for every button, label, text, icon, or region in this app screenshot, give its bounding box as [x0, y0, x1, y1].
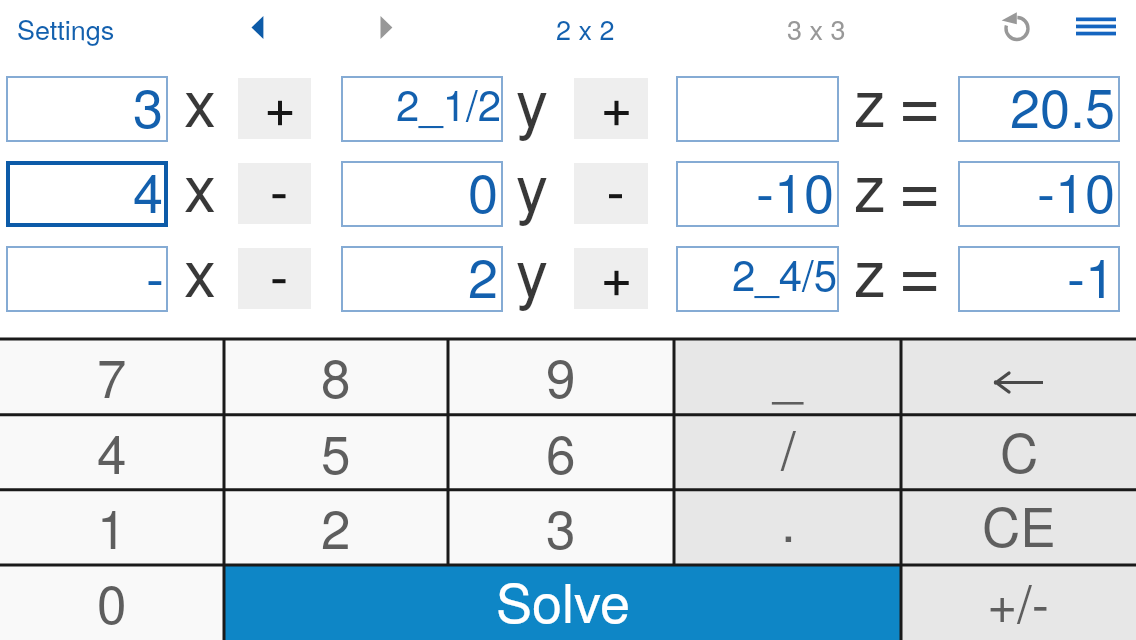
staticText: 0 [468, 151, 499, 228]
staticText: = [898, 215, 942, 321]
button[interactable] [901, 339, 1136, 415]
staticText: +/- [987, 563, 1050, 637]
staticText: 3 [546, 488, 576, 564]
staticText: Solve [496, 561, 630, 638]
button[interactable]: 2 [341, 246, 499, 312]
staticText: / [781, 409, 796, 485]
button[interactable] [238, 248, 311, 309]
button[interactable] [1070, 12, 1118, 42]
staticText: 8 [321, 337, 351, 413]
staticText: 2_4/5 [732, 243, 838, 303]
button[interactable]: 6 [448, 415, 674, 490]
staticText: 3 [133, 66, 164, 143]
button[interactable]: 1 [0, 490, 224, 565]
button[interactable] [238, 78, 311, 139]
button[interactable] [901, 339, 1136, 415]
button[interactable]: 3 [6, 76, 164, 142]
button[interactable]: 7 [0, 339, 224, 415]
staticText: Settings [17, 9, 115, 48]
button[interactable] [238, 163, 311, 224]
button[interactable]: 0 [341, 161, 499, 227]
button[interactable]: -10 [958, 161, 1116, 227]
button[interactable]: - [6, 246, 164, 312]
staticText: -10 [756, 151, 835, 228]
button[interactable]: 2_4/5 [676, 246, 835, 312]
staticText: 3 x 3 [787, 9, 846, 48]
button[interactable]: C [901, 415, 1136, 490]
staticText: 2 [468, 236, 499, 313]
staticText: z [854, 139, 886, 231]
button[interactable]: 4 [6, 161, 164, 227]
staticText: 5 [321, 413, 351, 489]
button[interactable]: 2 [224, 490, 448, 565]
staticText: _ [773, 334, 803, 410]
staticText: 2 x 2 [556, 9, 615, 48]
button[interactable]: / [674, 415, 901, 490]
staticText: 2 [321, 488, 351, 564]
button[interactable]: . [674, 490, 901, 565]
staticText: 9 [546, 337, 576, 413]
staticText: z [854, 54, 886, 146]
staticText: x [184, 224, 216, 316]
button[interactable]: -10 [676, 161, 835, 227]
button[interactable]: 8 [224, 339, 448, 415]
staticText: = [898, 45, 942, 151]
button[interactable] [574, 248, 648, 309]
staticText: y [516, 54, 548, 146]
staticText: C [1000, 412, 1039, 488]
button[interactable]: -1 [958, 246, 1116, 312]
button[interactable]: 3 [448, 490, 674, 565]
staticText: -1 [1067, 236, 1116, 313]
button[interactable]: 5 [224, 415, 448, 490]
staticText: x [184, 139, 216, 231]
staticText: y [516, 224, 548, 316]
button[interactable]: 3 x 3 [756, 8, 876, 48]
button[interactable] [370, 6, 410, 48]
button[interactable]: CE [901, 490, 1136, 565]
staticText: 4 [133, 151, 164, 228]
button[interactable] [574, 163, 648, 224]
button[interactable]: 4 [0, 415, 224, 490]
staticText: 2_1/2 [396, 73, 502, 133]
staticText: CE [982, 486, 1056, 562]
button[interactable]: +/- [901, 565, 1136, 640]
button[interactable] [997, 8, 1037, 48]
staticText: 0 [97, 563, 127, 639]
button[interactable]: 9 [448, 339, 674, 415]
staticText: 6 [546, 413, 576, 489]
staticText: -10 [1037, 151, 1116, 228]
button[interactable]: 2_1/2 [341, 76, 499, 142]
staticText: 7 [97, 337, 127, 413]
staticText: x [184, 54, 216, 146]
staticText: 4 [97, 413, 127, 489]
button[interactable]: 0 [0, 565, 224, 640]
button[interactable] [676, 76, 835, 142]
staticText: y [516, 139, 548, 231]
button[interactable]: Settings [17, 10, 187, 48]
button[interactable] [240, 6, 280, 48]
staticText: = [898, 130, 942, 236]
staticText: 1 [97, 488, 127, 564]
button[interactable] [574, 78, 648, 139]
staticText: . [781, 481, 796, 557]
staticText: 20.5 [1010, 66, 1116, 143]
button[interactable]: Solve [224, 565, 901, 640]
button[interactable]: 20.5 [958, 76, 1116, 142]
staticText: z [854, 224, 886, 316]
staticText: - [146, 236, 164, 313]
button[interactable]: _ [674, 339, 901, 415]
button[interactable]: 2 x 2 [525, 8, 645, 48]
